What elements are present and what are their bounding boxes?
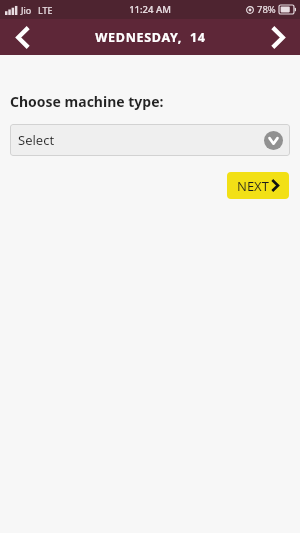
button[interactable]: Select bbox=[10, 124, 290, 156]
staticText: LTE bbox=[38, 4, 53, 16]
staticText: WEDNESDAY, 14 bbox=[95, 29, 206, 46]
staticText: 78% bbox=[257, 3, 276, 16]
staticText: Select bbox=[18, 131, 55, 149]
button[interactable]: Previous day bbox=[0, 19, 44, 55]
button[interactable]: NEXT bbox=[227, 172, 289, 199]
staticText: 11:24 AM bbox=[129, 3, 171, 16]
staticText: Jio bbox=[21, 4, 32, 16]
staticText: NEXT bbox=[237, 177, 269, 195]
button[interactable]: Next day bbox=[256, 19, 300, 55]
staticText: Choose machine type: bbox=[10, 92, 164, 111]
